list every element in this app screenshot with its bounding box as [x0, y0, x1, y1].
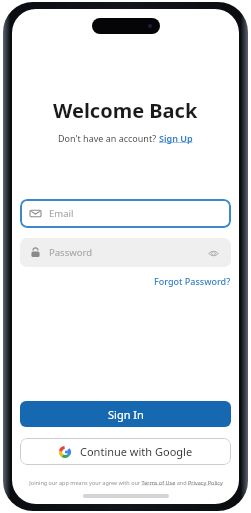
staticText: Joining our app means your agree with ou…	[29, 479, 223, 486]
button[interactable]: Forgot Password?	[154, 275, 231, 287]
staticText: Don't have an account?	[58, 132, 159, 144]
button[interactable]: Show password	[205, 245, 221, 261]
button[interactable]: Sign In	[20, 401, 231, 427]
button[interactable]: Sign Up	[159, 132, 193, 144]
button[interactable]: Password	[20, 238, 231, 267]
staticText: Forgot Password?	[154, 275, 231, 287]
staticText: Sign In	[108, 407, 144, 422]
button[interactable]: Email	[20, 199, 231, 228]
staticText: Continue with Google	[80, 444, 193, 459]
staticText: Email	[49, 207, 74, 220]
staticText: Welcome Back	[53, 97, 198, 124]
staticText: Password	[49, 246, 92, 259]
button[interactable]: Continue with Google	[20, 438, 231, 465]
staticText: Sign Up	[159, 132, 193, 144]
